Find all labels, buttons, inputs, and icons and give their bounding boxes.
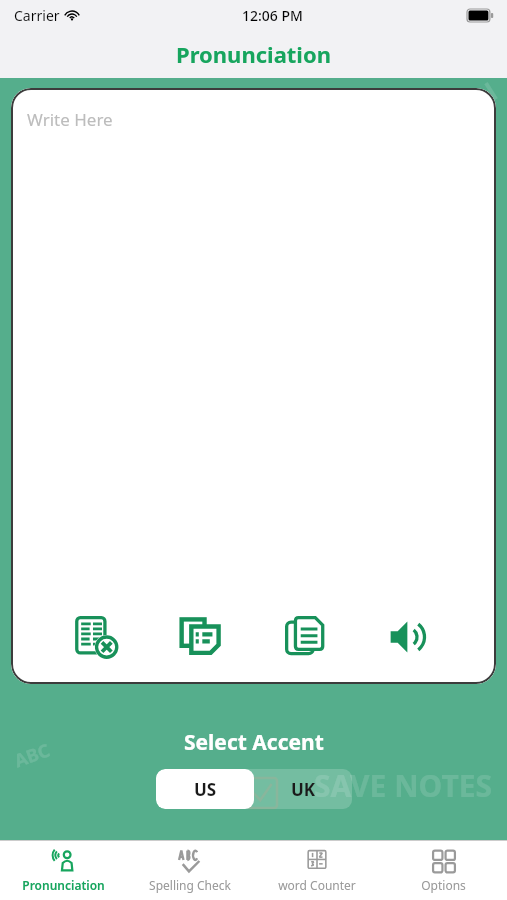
button[interactable]: Spelling Check	[126, 841, 253, 900]
staticText: UK	[291, 778, 316, 801]
staticText: 12:06 PM	[242, 6, 303, 25]
staticText: Pronunciation	[22, 877, 105, 893]
button[interactable]: Speak text	[379, 606, 441, 668]
staticText: word Counter	[278, 877, 356, 893]
button[interactable]: word Counter	[253, 841, 380, 900]
staticText: ABC	[11, 738, 53, 773]
staticText: Pronunciation	[176, 39, 331, 69]
button[interactable]: Write Here	[27, 108, 113, 131]
button[interactable]: Copy text	[275, 606, 337, 668]
button[interactable]: Clear text	[66, 606, 128, 668]
staticText: Carrier	[14, 6, 60, 25]
button[interactable]: UK	[254, 769, 352, 809]
staticText: SAVE NOTES	[314, 765, 493, 806]
button[interactable]: Options	[380, 841, 507, 900]
button[interactable]: Pronunciation	[0, 841, 126, 900]
staticText: Options	[421, 877, 466, 893]
staticText: Spelling Check	[149, 877, 231, 893]
staticText: TION	[428, 73, 503, 138]
button[interactable]: US	[156, 769, 254, 809]
staticText: US	[194, 778, 217, 801]
button[interactable]: Paste text	[170, 606, 232, 668]
staticText: Select Accent	[184, 728, 324, 757]
